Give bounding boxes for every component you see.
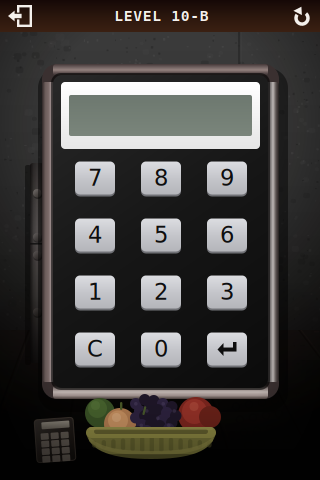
button[interactable]: 4 [75,218,115,252]
staticText: C [87,336,103,362]
button[interactable] [207,332,247,366]
staticText: LEVEL 10-B [114,7,209,25]
staticText: 2 [154,279,168,305]
button[interactable]: Restart level [281,0,320,32]
staticText: 4 [88,222,102,248]
staticText: 0 [154,336,168,362]
staticText: 8 [154,165,168,191]
staticText: 7 [88,165,102,191]
button[interactable]: 9 [207,161,247,195]
button[interactable]: C [75,332,115,366]
button[interactable]: 8 [141,161,181,195]
button[interactable]: 3 [207,275,247,309]
button[interactable]: 5 [141,218,181,252]
staticText: 9 [220,165,234,191]
button[interactable]: 2 [141,275,181,309]
staticText: 5 [154,222,168,248]
staticText: 1 [88,279,102,305]
button[interactable]: Exit level [0,0,42,33]
button[interactable]: 0 [141,332,181,366]
staticText: 6 [220,222,234,248]
button[interactable]: 6 [207,218,247,252]
button[interactable]: 1 [75,275,115,309]
button[interactable]: 7 [75,161,115,195]
staticText: 3 [220,279,234,305]
